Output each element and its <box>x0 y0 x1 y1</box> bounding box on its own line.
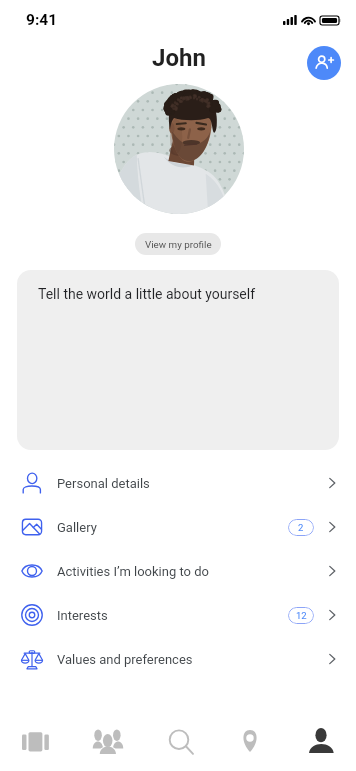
button[interactable]: Values and preferences <box>0 637 356 681</box>
button[interactable]: Gallery <box>0 505 356 549</box>
staticText: Activities I’m looking to do <box>57 564 209 579</box>
button[interactable]: Search <box>143 709 214 771</box>
staticText: Personal details <box>57 476 150 491</box>
button[interactable]: Places <box>214 709 285 771</box>
button[interactable]: Personal details <box>0 461 356 505</box>
button[interactable]: View my profile <box>135 233 221 255</box>
staticText: View my profile <box>145 239 212 250</box>
staticText: Values and preferences <box>57 652 193 667</box>
button[interactable]: Cards <box>0 709 72 771</box>
button[interactable]: Profile photo <box>114 84 244 214</box>
button[interactable]: Tell the world a little about yourself <box>17 270 339 450</box>
staticText: Gallery <box>57 520 97 535</box>
staticText: Tell the world a little about yourself <box>38 286 256 302</box>
staticText: John <box>152 44 206 72</box>
staticText: 2 <box>298 522 304 533</box>
button[interactable]: Activities I’m looking to do <box>0 549 356 593</box>
staticText: 9:41 <box>26 11 58 29</box>
button[interactable]: Profile <box>285 709 356 771</box>
button[interactable]: Interests <box>0 593 356 637</box>
button[interactable]: Add friend <box>307 46 341 80</box>
button[interactable]: People <box>72 709 143 771</box>
staticText: Interests <box>57 608 108 623</box>
staticText: 12 <box>296 610 307 621</box>
